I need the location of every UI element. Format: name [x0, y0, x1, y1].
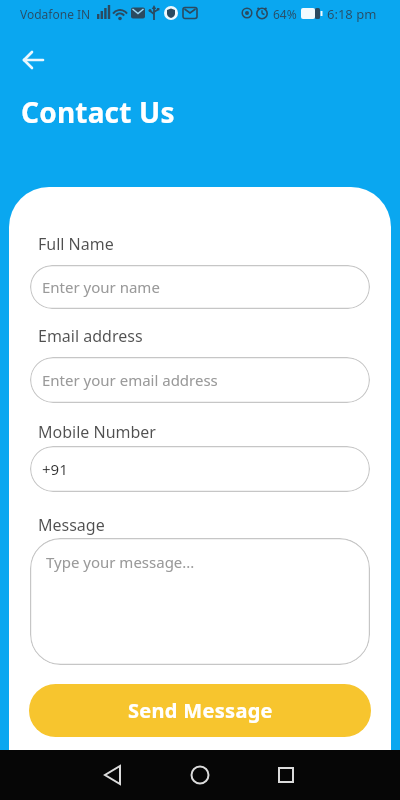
button[interactable]: Enter your email address	[30, 357, 370, 403]
button[interactable]	[180, 755, 220, 795]
staticText: Enter your name	[42, 277, 160, 297]
button[interactable]	[266, 755, 306, 795]
staticText: Message	[38, 514, 105, 536]
staticText: Vodafone IN	[20, 6, 91, 22]
button[interactable]: Send Message	[29, 684, 371, 737]
staticText: Email address	[38, 325, 143, 347]
staticText: +91	[42, 459, 68, 479]
staticText: Type your message...	[46, 552, 195, 572]
staticText: 64%	[273, 6, 297, 22]
staticText: Send Message	[128, 697, 273, 724]
button[interactable]	[16, 46, 52, 74]
staticText: Contact Us	[21, 93, 175, 131]
button[interactable]: Enter your name	[30, 265, 370, 309]
staticText: Mobile Number	[38, 421, 156, 443]
button[interactable]	[94, 755, 134, 795]
button[interactable]: +91	[30, 446, 370, 492]
staticText: Full Name	[38, 233, 114, 255]
staticText: Enter your email address	[42, 370, 218, 390]
button[interactable]: Type your message...	[30, 538, 370, 665]
staticText: 6:18 pm	[327, 5, 377, 23]
